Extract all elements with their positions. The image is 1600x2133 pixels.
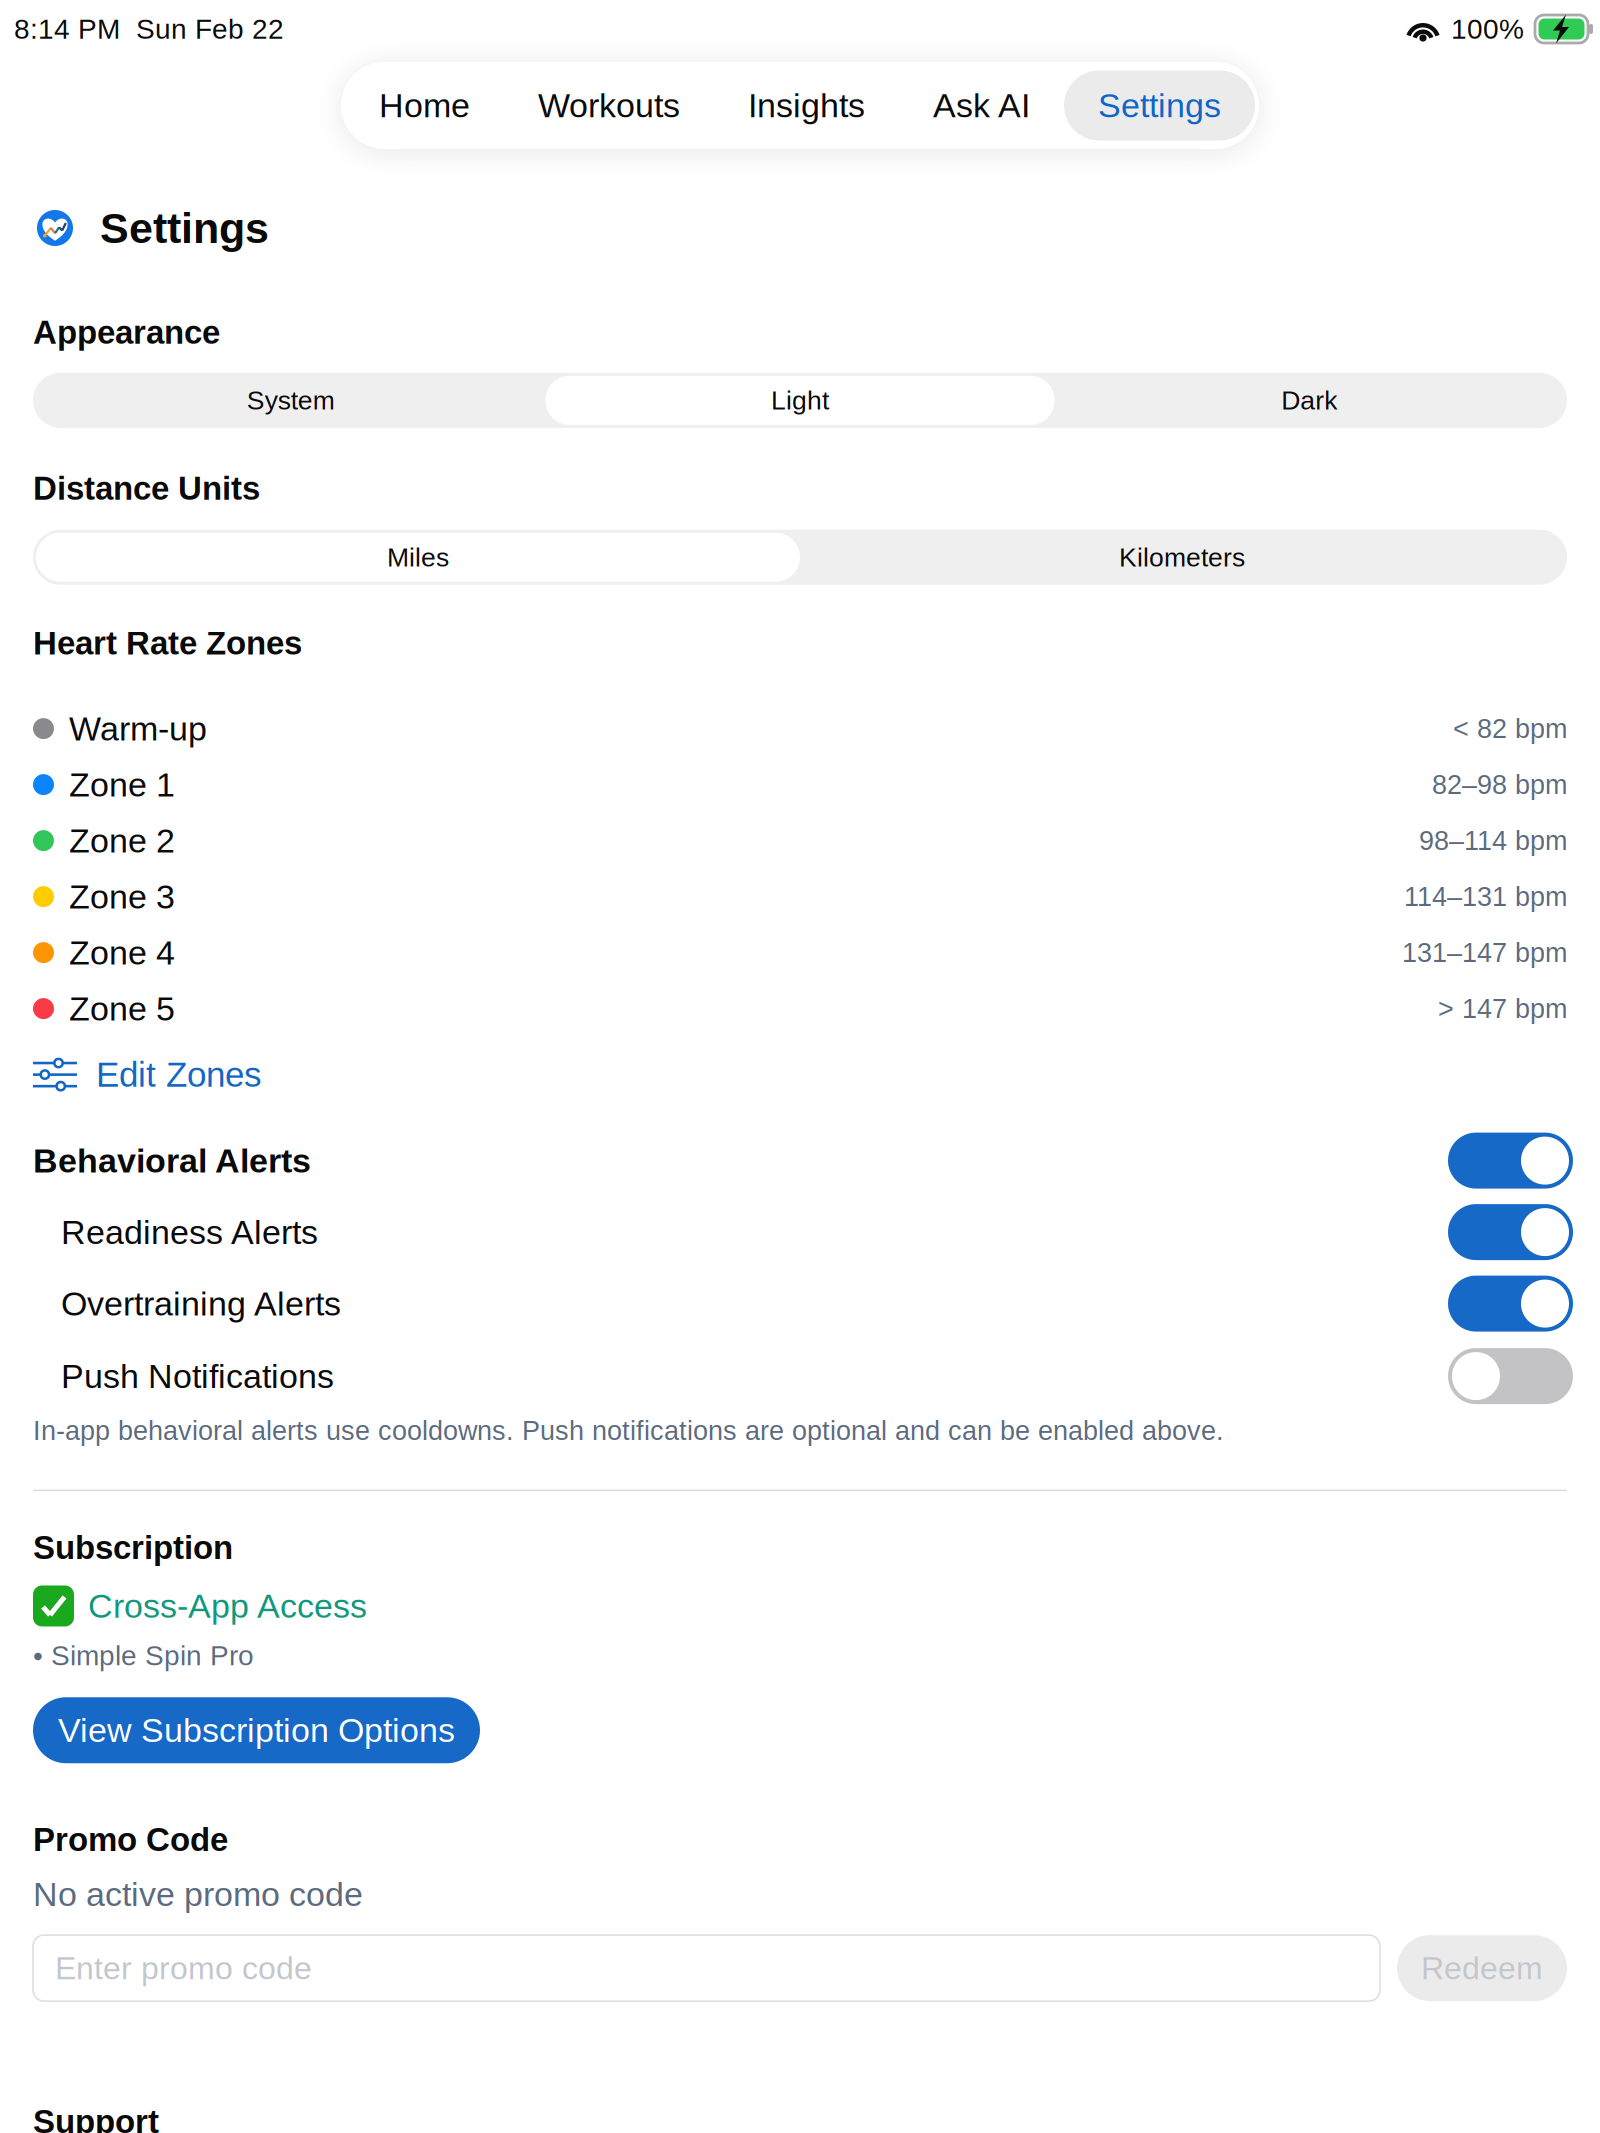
staticText: Zone 3 (69, 878, 175, 916)
staticText: 98–114 bpm (1419, 825, 1567, 856)
staticText: System (247, 386, 335, 415)
staticText: Light (771, 386, 829, 415)
staticText: Settings (100, 204, 269, 252)
staticText: 131–147 bpm (1402, 937, 1567, 968)
button[interactable]: Edit Zones (33, 1046, 262, 1104)
button[interactable]: Home (345, 70, 504, 140)
button[interactable]: Behavioral Alerts (33, 1125, 1567, 1197)
button[interactable]: Insights (714, 70, 899, 140)
staticText: Zone 2 (69, 822, 175, 860)
staticText: Heart Rate Zones (33, 625, 302, 662)
staticText: • Simple Spin Pro (33, 1640, 254, 1671)
staticText: Miles (387, 542, 449, 572)
staticText: Push Notifications (61, 1357, 334, 1395)
staticText: 82–98 bpm (1432, 769, 1567, 800)
staticText: View Subscription Options (58, 1711, 455, 1749)
staticText: Insights (748, 86, 865, 124)
button[interactable]: Light (545, 376, 1055, 425)
staticText: Settings (1098, 86, 1221, 124)
button[interactable]: Miles (36, 533, 800, 582)
staticText: Promo Code (33, 1821, 228, 1858)
button[interactable]: Overtraining Alerts (33, 1268, 1567, 1340)
button[interactable]: Redeem (1397, 1935, 1567, 2001)
staticText: Sun Feb 22 (136, 13, 284, 45)
staticText: Enter promo code (55, 1950, 312, 1986)
staticText: Edit Zones (96, 1055, 262, 1094)
staticText: No active promo code (33, 1875, 363, 1913)
staticText: Workouts (538, 86, 680, 124)
staticText: Zone 1 (69, 766, 175, 804)
staticText: Zone 5 (69, 990, 175, 1028)
staticText: Overtraining Alerts (61, 1285, 341, 1323)
staticText: Subscription (33, 1529, 233, 1566)
staticText: 100% (1451, 13, 1524, 45)
button[interactable]: Push Notifications (33, 1346, 1567, 1407)
staticText: Zone 4 (69, 934, 175, 972)
staticText: Warm-up (69, 710, 207, 748)
staticText: In-app behavioral alerts use cooldowns. … (33, 1415, 1224, 1446)
button[interactable]: Workouts (504, 70, 714, 140)
staticText: Ask AI (933, 86, 1030, 124)
staticText: Distance Units (33, 470, 260, 507)
staticText: < 82 bpm (1453, 713, 1567, 744)
staticText: Dark (1281, 386, 1337, 415)
staticText: > 147 bpm (1438, 993, 1567, 1024)
staticText: 8:14 PM (14, 13, 120, 45)
staticText: Home (379, 86, 470, 124)
button[interactable]: System (36, 376, 545, 425)
button[interactable]: Readiness Alerts (33, 1197, 1567, 1268)
button[interactable]: Ask AI (899, 70, 1064, 140)
button[interactable]: Dark (1055, 376, 1564, 425)
staticText: Kilometers (1119, 542, 1245, 572)
button[interactable]: Kilometers (800, 533, 1564, 582)
staticText: Readiness Alerts (61, 1213, 318, 1251)
staticText: Appearance (33, 314, 220, 351)
button[interactable]: Settings (1064, 70, 1255, 140)
staticText: 114–131 bpm (1404, 881, 1567, 912)
staticText: Behavioral Alerts (33, 1142, 311, 1180)
staticText: Cross-App Access (88, 1587, 367, 1625)
staticText: Support (33, 2103, 159, 2133)
button[interactable]: View Subscription Options (33, 1697, 480, 1763)
staticText: Redeem (1421, 1950, 1543, 1986)
